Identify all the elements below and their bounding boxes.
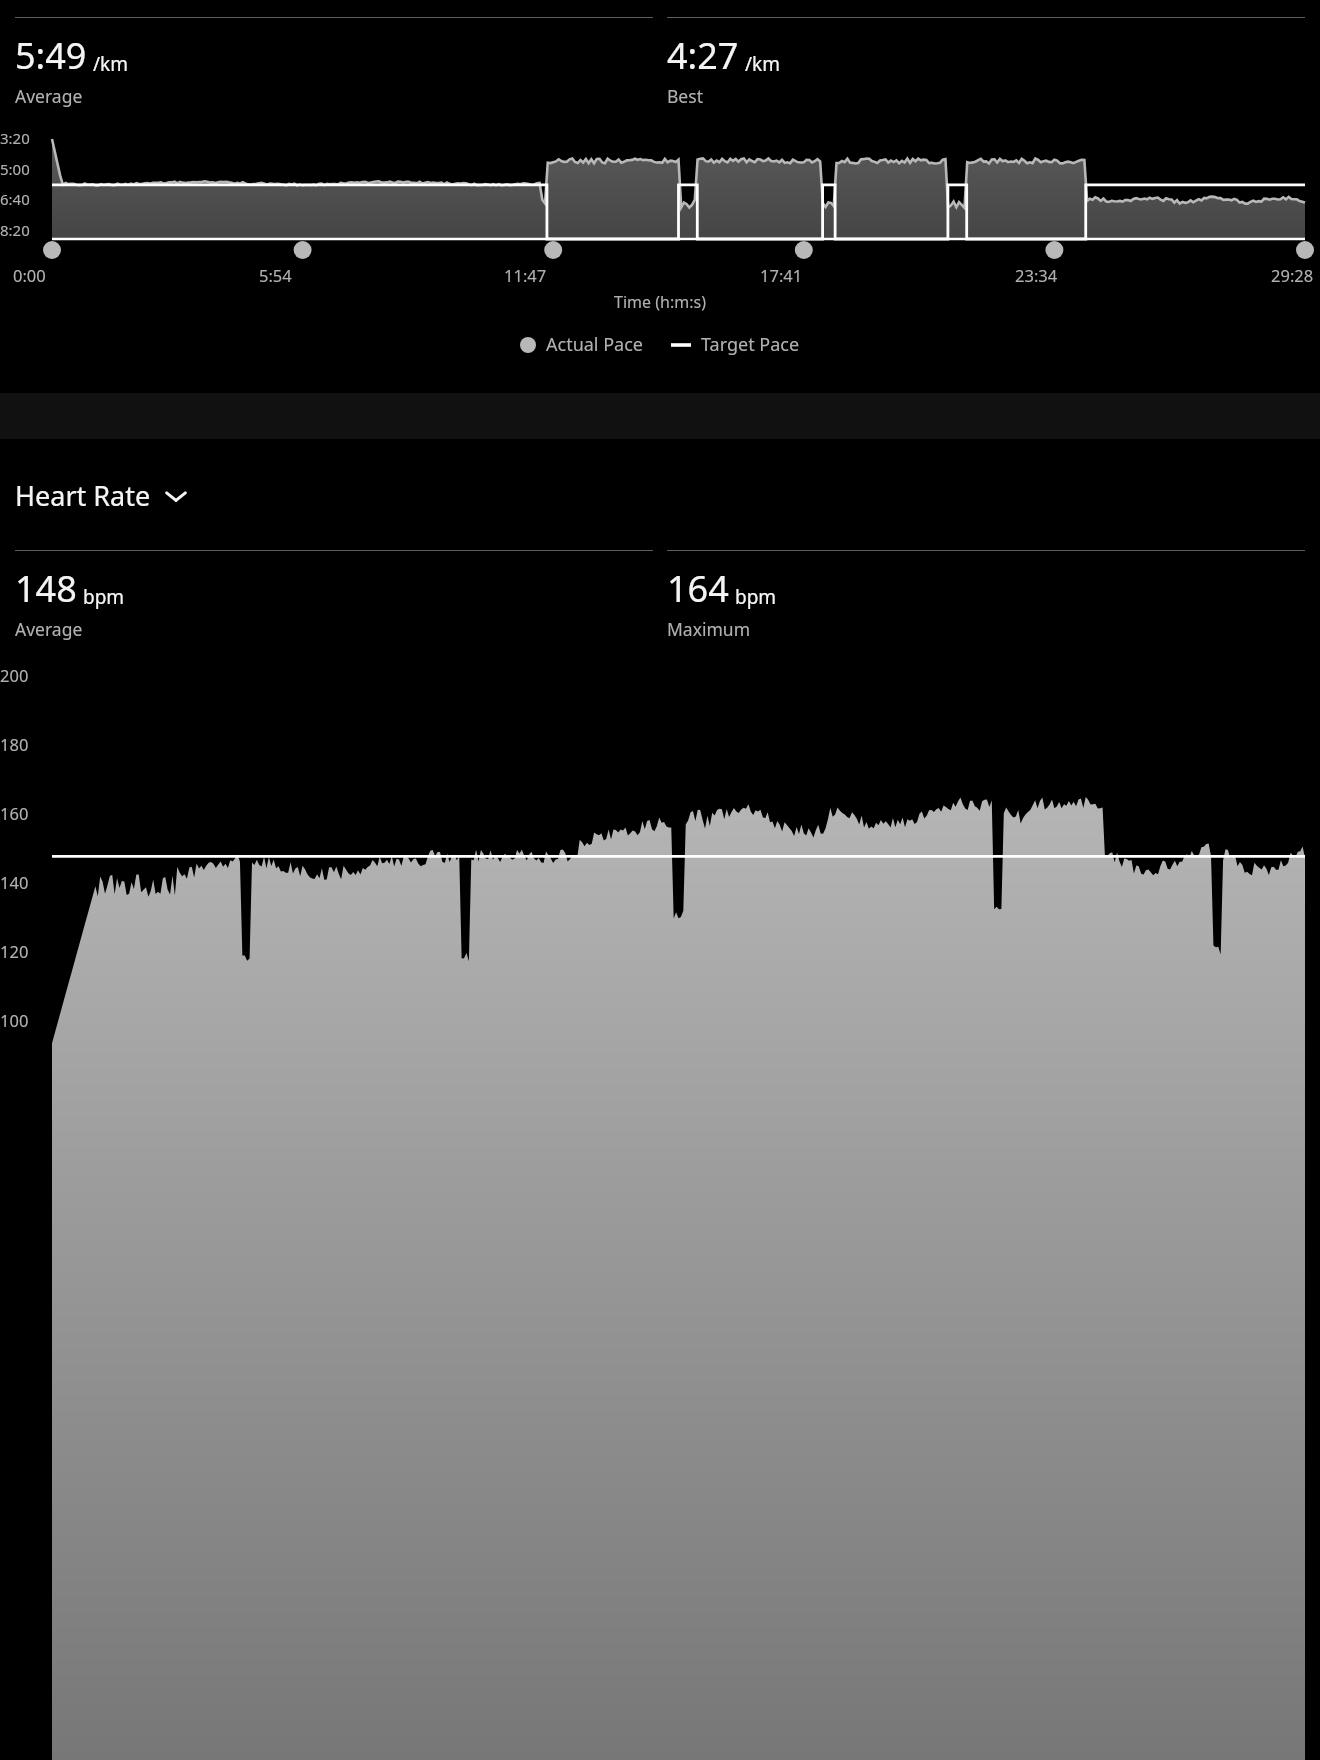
staticText: Average: [15, 617, 83, 641]
staticText: 6:40: [0, 189, 30, 209]
staticText: Target Pace: [701, 332, 800, 357]
staticText: /km: [93, 51, 128, 77]
staticText: Heart Rate: [15, 477, 151, 514]
staticText: /km: [745, 51, 780, 77]
staticText: 0:00: [13, 264, 46, 286]
staticText: bpm: [735, 584, 777, 610]
staticText: 5:00: [0, 159, 30, 179]
staticText: bpm: [83, 584, 125, 610]
staticText: 200: [0, 664, 29, 686]
staticText: 29:28: [1271, 264, 1314, 286]
button[interactable]: Target Pace: [667, 328, 804, 361]
staticText: 17:41: [760, 264, 803, 286]
staticText: 140: [0, 871, 29, 893]
staticText: 8:20: [0, 220, 30, 240]
staticText: 180: [0, 733, 29, 755]
button[interactable]: Heart Rate: [0, 473, 204, 518]
staticText: 5:54: [259, 264, 292, 286]
staticText: 4:27: [667, 31, 739, 80]
staticText: 120: [0, 940, 29, 962]
staticText: Best: [667, 84, 703, 108]
staticText: 23:34: [1015, 264, 1058, 286]
staticText: 100: [0, 1009, 29, 1031]
staticText: 5:49: [15, 31, 87, 80]
staticText: 164: [667, 564, 729, 613]
staticText: Actual Pace: [546, 332, 643, 357]
staticText: 11:47: [504, 264, 547, 286]
staticText: 3:20: [0, 128, 30, 148]
staticText: 160: [0, 802, 29, 824]
staticText: Average: [15, 84, 83, 108]
button[interactable]: Actual Pace: [516, 328, 647, 361]
staticText: Maximum: [667, 617, 751, 641]
other: Collapse Heart Rate: [163, 483, 189, 509]
staticText: 148: [15, 564, 77, 613]
staticText: Time (h:m:s): [0, 291, 1320, 313]
